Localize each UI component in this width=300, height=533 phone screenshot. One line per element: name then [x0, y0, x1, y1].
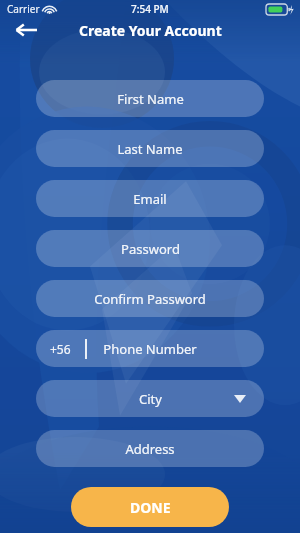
- staticText: DONE: [130, 498, 171, 517]
- staticText: Password: [121, 240, 180, 258]
- staticText: Phone Number: [103, 340, 197, 358]
- button[interactable]: Confirm Password: [36, 280, 264, 317]
- button[interactable]: Address: [36, 430, 264, 467]
- staticText: +56: [50, 341, 71, 357]
- staticText: Last Name: [117, 140, 183, 158]
- button[interactable]: Last Name: [36, 130, 264, 167]
- button[interactable]: First Name: [36, 80, 264, 117]
- staticText: Address: [125, 440, 175, 458]
- button[interactable]: Email: [36, 180, 264, 217]
- button[interactable]: Phone Number: [36, 330, 264, 367]
- staticText: Confirm Password: [94, 290, 206, 308]
- staticText: Create Your Account: [79, 21, 222, 40]
- staticText: First Name: [117, 90, 184, 108]
- button[interactable]: Password: [36, 230, 264, 267]
- button[interactable]: Back: [8, 13, 44, 47]
- button[interactable]: DONE: [71, 487, 229, 527]
- staticText: Carrier: [7, 2, 40, 16]
- staticText: City: [139, 390, 162, 408]
- staticText: 7:54 PM: [131, 2, 169, 16]
- button[interactable]: City: [36, 380, 264, 417]
- staticText: Email: [133, 190, 167, 208]
